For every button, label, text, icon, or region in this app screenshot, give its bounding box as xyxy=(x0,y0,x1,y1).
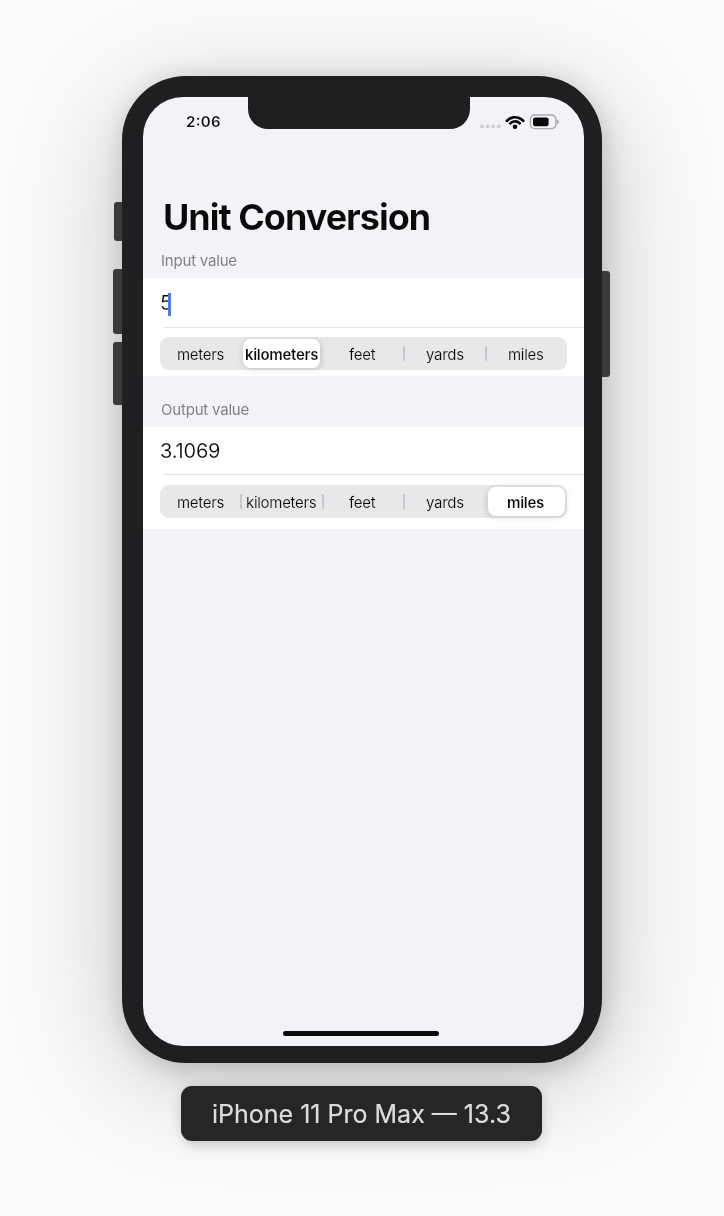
button[interactable]: miles xyxy=(485,337,566,370)
staticText: miles xyxy=(507,493,544,511)
button[interactable]: meters xyxy=(160,337,241,370)
staticText: meters xyxy=(177,493,225,511)
staticText: Unit Conversion xyxy=(163,195,431,239)
staticText: yards xyxy=(426,493,464,511)
staticText: meters xyxy=(177,345,225,363)
button[interactable]: iPhone 11 Pro Max — 13.3 xyxy=(181,1086,542,1141)
staticText: Output value xyxy=(161,400,250,418)
button[interactable]: yards xyxy=(404,337,485,370)
button[interactable]: yards xyxy=(404,485,485,518)
staticText: 2:06 xyxy=(186,112,221,130)
staticText: kilometers xyxy=(245,345,319,363)
button[interactable]: miles xyxy=(485,485,566,518)
staticText: Input value xyxy=(161,251,237,269)
staticText: iPhone 11 Pro Max — 13.3 xyxy=(212,1099,511,1129)
staticText: yards xyxy=(426,345,464,363)
staticText: kilometers xyxy=(246,493,317,511)
staticText: 5 xyxy=(160,291,172,315)
staticText: feet xyxy=(349,493,376,511)
staticText: miles xyxy=(508,345,544,363)
button[interactable]: feet xyxy=(322,337,403,370)
button[interactable]: 5 xyxy=(143,278,584,327)
button[interactable]: kilometers xyxy=(241,337,322,370)
button[interactable]: feet xyxy=(322,485,403,518)
button[interactable]: kilometers xyxy=(241,485,322,518)
staticText: 3.1069 xyxy=(160,439,221,463)
button[interactable]: meters xyxy=(160,485,241,518)
button[interactable]: 3.1069 xyxy=(143,427,584,474)
staticText: feet xyxy=(349,345,376,363)
